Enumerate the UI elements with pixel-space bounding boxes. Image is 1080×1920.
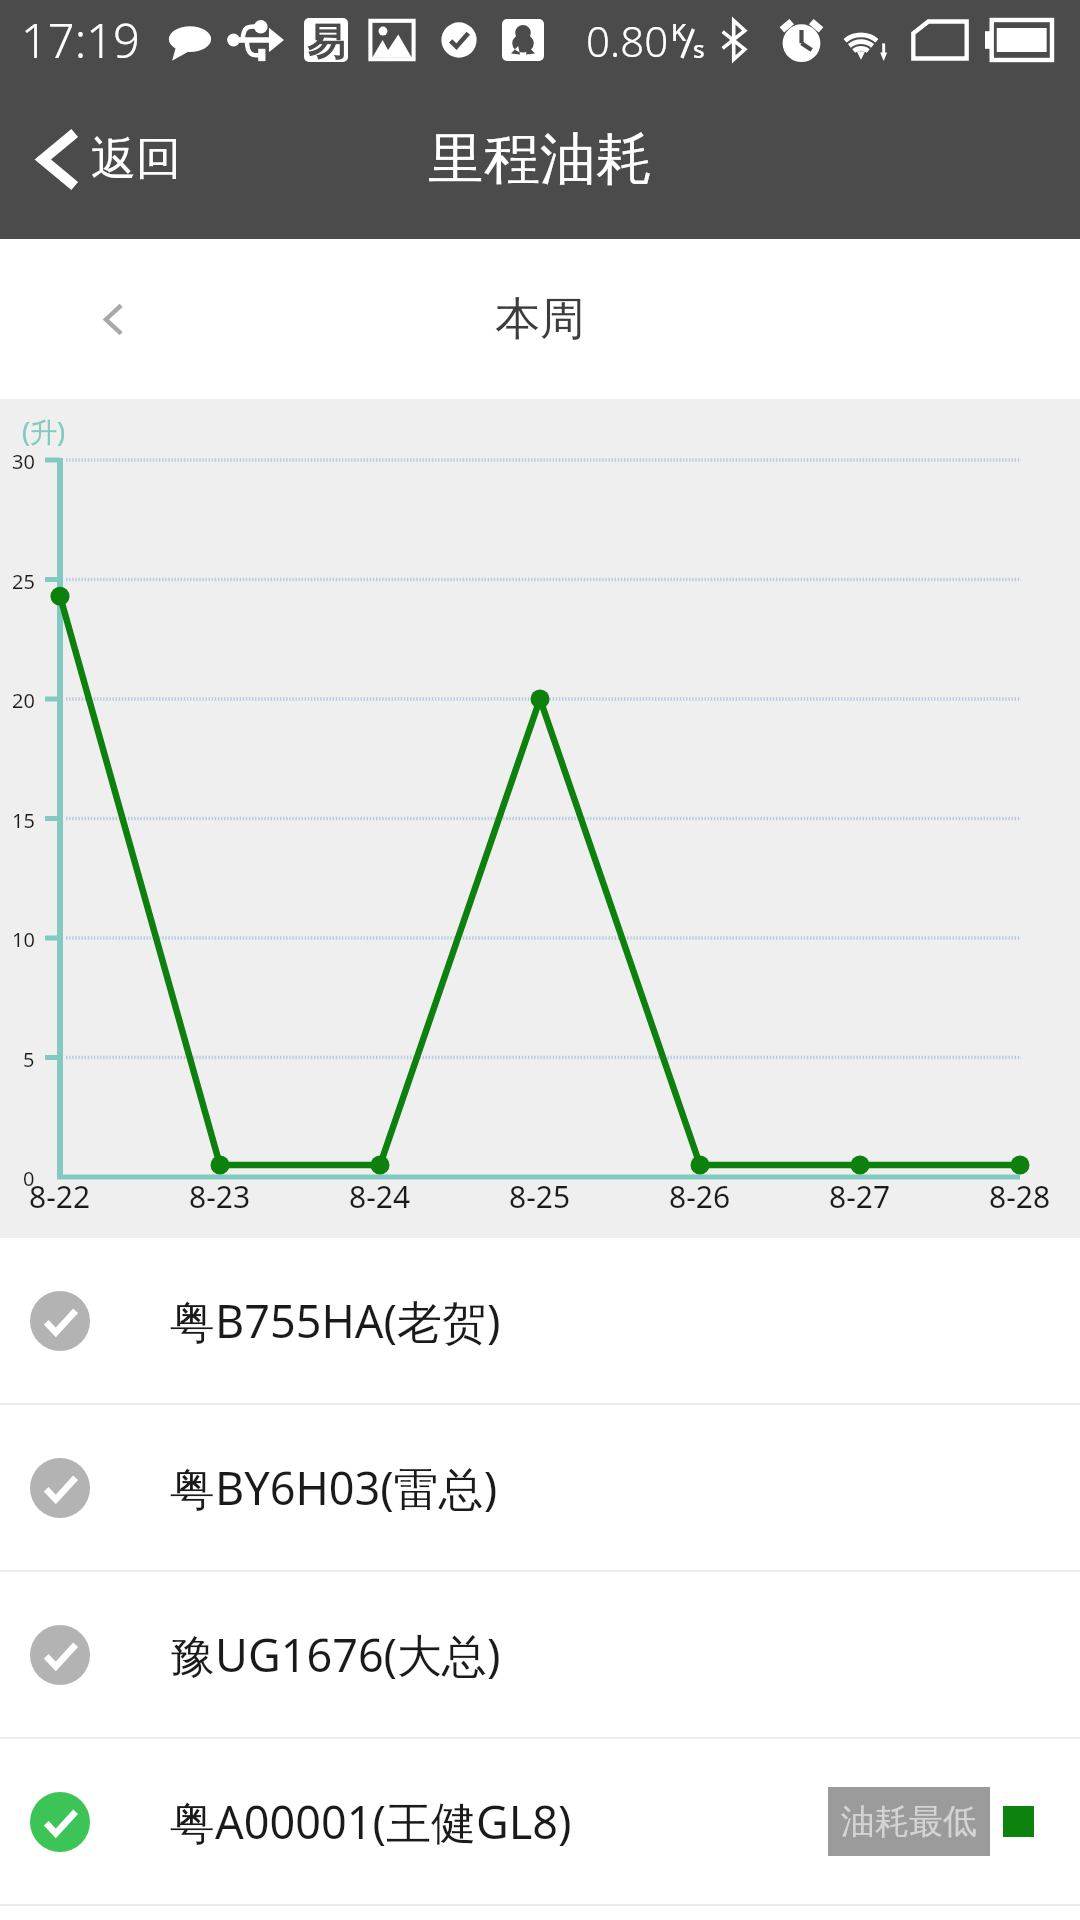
staticText: 17:19 <box>21 8 140 72</box>
button[interactable]: 粤BY6H03(雷总) <box>0 1405 1080 1570</box>
staticText: 25 <box>12 568 35 595</box>
staticText: 20 <box>12 687 35 714</box>
staticText: 30 <box>12 448 35 475</box>
staticText: 8-24 <box>349 1176 411 1217</box>
staticText: 8-26 <box>669 1176 731 1217</box>
staticText: 15 <box>12 807 35 834</box>
staticText: 里程油耗 <box>428 124 652 195</box>
button[interactable]: 粤B755HA(老贺) <box>0 1238 1080 1403</box>
staticText: 0.80 <box>586 12 669 69</box>
staticText: 8-23 <box>189 1176 251 1217</box>
button[interactable]: 返回 <box>0 80 324 239</box>
staticText: 本周 <box>495 291 585 348</box>
button[interactable]: 豫UG1676(大总) <box>0 1572 1080 1737</box>
staticText: 10 <box>12 926 35 953</box>
staticText: s <box>693 32 705 65</box>
staticText: 返回 <box>91 131 181 188</box>
staticText: (升) <box>22 413 66 450</box>
staticText: 易 <box>307 18 345 62</box>
staticText: 8-25 <box>509 1176 571 1217</box>
button[interactable]: Previous week <box>0 251 227 388</box>
staticText: 8-27 <box>829 1176 891 1217</box>
staticText: 5 <box>23 1046 35 1073</box>
staticText: 粤A00001(王健GL8) <box>170 1791 572 1852</box>
staticText: 粤BY6H03(雷总) <box>170 1457 498 1518</box>
button[interactable]: 粤A00001(王健GL8) <box>0 1739 1080 1904</box>
staticText: 8-28 <box>989 1176 1051 1217</box>
staticText: 豫UG1676(大总) <box>170 1624 501 1685</box>
staticText: 粤B755HA(老贺) <box>170 1290 501 1351</box>
staticText: 8-22 <box>29 1176 91 1217</box>
staticText: 0 <box>23 1165 35 1192</box>
staticText: 油耗最低 <box>841 1800 977 1843</box>
staticText: K <box>671 15 687 48</box>
